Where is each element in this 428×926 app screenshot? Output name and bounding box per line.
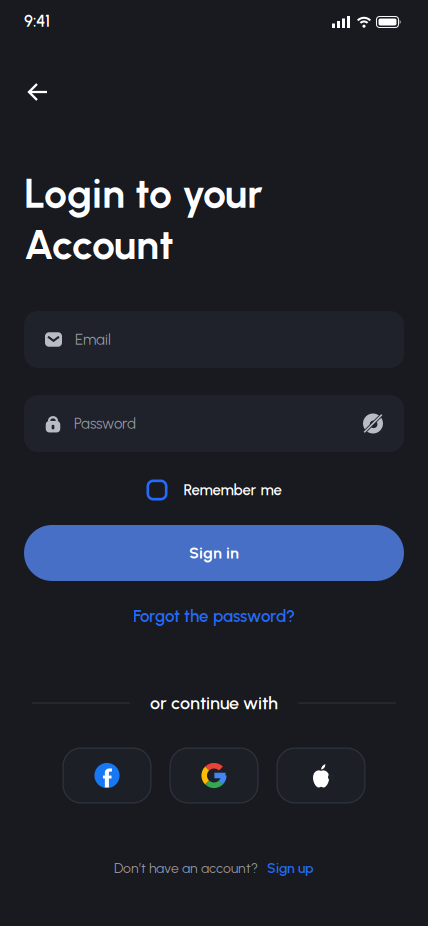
button[interactable]: Show password — [361, 411, 385, 435]
button[interactable]: Remember me — [146, 479, 281, 500]
button[interactable]: Continue with Apple — [276, 747, 365, 803]
staticText: Don’t have an account? — [114, 860, 258, 876]
staticText: Remember me — [183, 481, 281, 499]
staticText: Login to your — [24, 169, 263, 218]
staticText: Forgot the password? — [133, 606, 295, 626]
button[interactable]: Sign up — [267, 860, 314, 876]
staticText: Email — [75, 330, 111, 348]
staticText: 9:41 — [24, 11, 50, 31]
button[interactable]: Back — [26, 82, 50, 102]
button[interactable]: Continue with Google — [169, 747, 258, 803]
staticText: Account — [24, 220, 174, 269]
button[interactable]: Sign in — [24, 525, 404, 581]
staticText: Sign up — [267, 860, 314, 876]
staticText: or continue with — [150, 692, 278, 714]
button[interactable]: Forgot the password? — [133, 606, 295, 626]
staticText: Sign in — [189, 543, 239, 563]
staticText: Password — [74, 414, 136, 432]
button[interactable]: Password — [24, 395, 404, 452]
button[interactable]: Email — [24, 311, 404, 368]
button[interactable]: Continue with Facebook — [62, 747, 151, 803]
